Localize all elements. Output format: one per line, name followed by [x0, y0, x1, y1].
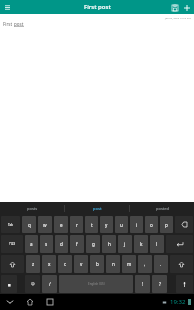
staticText: First post	[84, 3, 111, 11]
button[interactable]: Add	[181, 2, 192, 13]
button[interactable]: t	[85, 216, 98, 233]
button[interactable]: Voice input	[176, 275, 193, 293]
staticText: post	[14, 21, 24, 27]
button[interactable]: g	[86, 235, 100, 253]
staticText: d	[60, 241, 63, 247]
button[interactable]: posted	[130, 202, 194, 215]
staticText: w	[43, 222, 47, 228]
button[interactable]: p	[160, 216, 173, 233]
staticText: k	[140, 241, 143, 247]
staticText: e	[60, 222, 63, 228]
staticText: Jan 23, 2016 17:13 PM	[165, 16, 191, 19]
button[interactable]: Shift	[170, 255, 193, 273]
button[interactable]: b	[90, 255, 104, 273]
staticText: !	[142, 281, 144, 287]
button[interactable]: Backspace	[175, 216, 193, 233]
staticText: m	[127, 261, 132, 267]
staticText: Tab	[8, 223, 13, 227]
button[interactable]: l	[150, 235, 164, 253]
staticText: x	[48, 261, 51, 267]
button[interactable]: English (US)	[59, 275, 133, 293]
staticText: f	[76, 241, 78, 247]
button[interactable]: w	[38, 216, 52, 233]
button[interactable]: Hide keyboard	[3, 295, 17, 309]
staticText: r	[76, 222, 78, 228]
button[interactable]: f	[70, 235, 84, 253]
button[interactable]: ☺	[25, 275, 40, 293]
staticText: c	[64, 261, 67, 267]
button[interactable]: y	[100, 216, 113, 233]
button[interactable]: ,	[138, 255, 152, 273]
button[interactable]: /	[42, 275, 57, 293]
button[interactable]: Enter	[166, 235, 193, 253]
staticText: i	[136, 222, 138, 228]
button[interactable]: Save	[169, 2, 180, 13]
staticText: a	[30, 241, 33, 247]
button[interactable]: r	[70, 216, 83, 233]
staticText: ?	[159, 281, 161, 287]
button[interactable]: e	[54, 216, 68, 233]
button[interactable]: Shift	[1, 255, 24, 273]
staticText: g	[92, 241, 95, 247]
button[interactable]: ?	[152, 275, 167, 293]
staticText: ,	[144, 261, 146, 267]
button[interactable]: s	[40, 235, 53, 253]
button[interactable]: i	[130, 216, 143, 233]
button[interactable]: x	[42, 255, 56, 273]
staticText: First	[3, 21, 14, 27]
staticText: posted	[156, 206, 169, 211]
button[interactable]: u	[115, 216, 128, 233]
button[interactable]: d	[55, 235, 68, 253]
button[interactable]: c	[58, 255, 72, 273]
staticText: b	[96, 261, 99, 267]
staticText: l	[156, 241, 158, 247]
staticText: 19:32	[170, 298, 186, 306]
button[interactable]: Home	[23, 295, 37, 309]
button[interactable]: j	[118, 235, 132, 253]
button[interactable]: ■	[1, 275, 17, 293]
button[interactable]: Menu	[2, 2, 13, 13]
button[interactable]: Recent apps	[43, 295, 57, 309]
button[interactable]: !	[135, 275, 150, 293]
staticText: English (US)	[88, 282, 105, 286]
button[interactable]: h	[102, 235, 116, 253]
button[interactable]: o	[145, 216, 158, 233]
staticText: .	[160, 261, 162, 267]
staticText: j	[124, 241, 126, 247]
button[interactable]: m	[122, 255, 136, 273]
staticText: ?123	[9, 242, 16, 246]
staticText: o	[150, 222, 153, 228]
staticText: q	[28, 222, 31, 228]
button[interactable]: v	[74, 255, 88, 273]
button[interactable]: .	[154, 255, 168, 273]
staticText: ■	[8, 283, 11, 286]
button[interactable]: Tab	[1, 216, 20, 233]
button[interactable]: q	[22, 216, 36, 233]
staticText: s	[45, 241, 48, 247]
staticText: n	[112, 261, 115, 267]
button[interactable]: post	[65, 202, 129, 215]
staticText: v	[80, 261, 83, 267]
staticText: ☺	[31, 282, 35, 286]
button[interactable]: k	[134, 235, 148, 253]
staticText: z	[32, 261, 35, 267]
staticText: u	[120, 222, 123, 228]
staticText: posts	[27, 206, 38, 211]
staticText: t	[91, 222, 93, 228]
button[interactable]: posts	[0, 202, 64, 215]
button[interactable]: a	[25, 235, 38, 253]
staticText: p	[165, 222, 168, 228]
staticText: y	[105, 222, 108, 228]
staticText: h	[108, 241, 111, 247]
button[interactable]: n	[106, 255, 120, 273]
button[interactable]: z	[26, 255, 40, 273]
staticText: /	[49, 281, 51, 287]
staticText: post	[93, 206, 102, 211]
button[interactable]: ?123	[1, 235, 23, 253]
